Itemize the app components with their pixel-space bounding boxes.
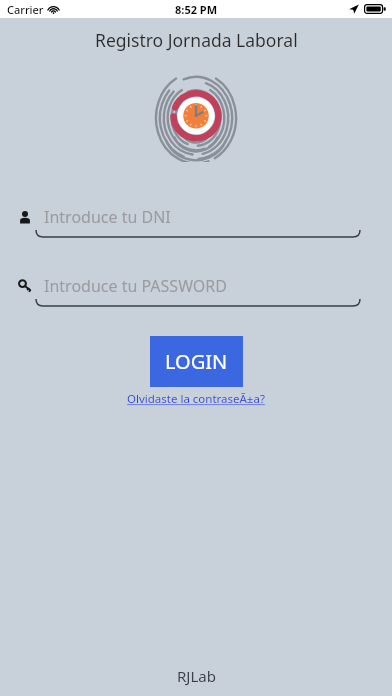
button[interactable]: Password <box>0 273 392 299</box>
staticText: 8:52 PM <box>175 2 218 17</box>
staticText: Introduce tu PASSWORD <box>44 275 227 297</box>
staticText: LOGIN <box>165 348 228 375</box>
button[interactable]: LOGIN <box>150 336 243 387</box>
staticText: Introduce tu DNI <box>44 206 171 228</box>
staticText: RJLab <box>177 666 216 686</box>
other: Location <box>349 4 359 14</box>
button[interactable]: User <box>0 204 392 230</box>
other: App logo <box>152 74 240 162</box>
staticText: Registro Jornada Laboral <box>95 28 298 52</box>
other: Password <box>18 279 32 293</box>
staticText: Carrier <box>7 2 44 17</box>
other: User <box>18 210 32 224</box>
staticText: Olvidaste la contraseÃ±a? <box>127 391 265 407</box>
button[interactable]: Olvidaste la contraseÃ±a? <box>125 390 267 408</box>
